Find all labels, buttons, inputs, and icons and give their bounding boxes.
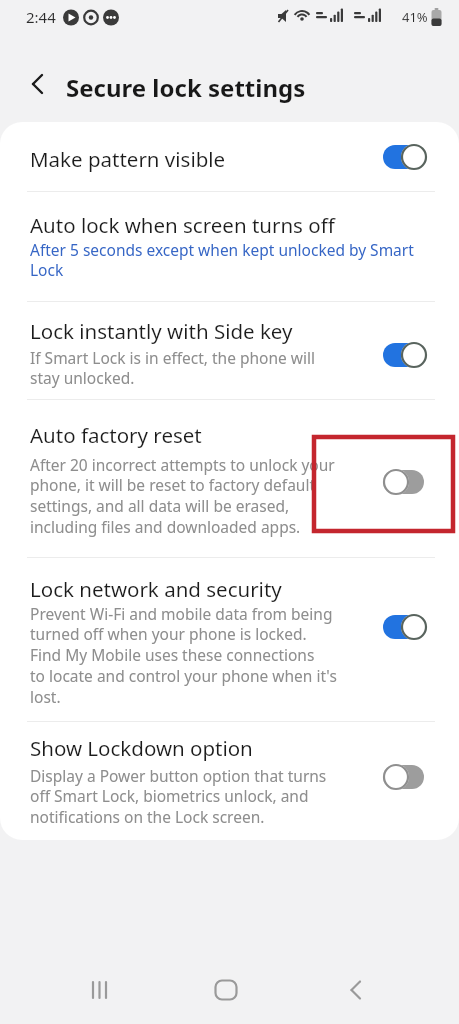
staticText: If Smart Lock is in effect, the phone wi… — [30, 347, 315, 389]
button[interactable] — [88, 977, 114, 1003]
staticText: Lock instantly with Side key — [30, 317, 293, 345]
button[interactable] — [24, 70, 58, 104]
button[interactable]: Auto lock when screen turns off — [0, 192, 459, 301]
button[interactable]: Show Lockdown option — [0, 722, 459, 840]
staticText: Make pattern visible — [30, 145, 226, 173]
button[interactable] — [383, 613, 427, 641]
button[interactable]: Lock network and security — [0, 558, 459, 721]
staticText: Show Lockdown option — [30, 734, 253, 762]
button[interactable]: Lock instantly with Side key — [0, 302, 459, 399]
staticText: 41% — [402, 8, 428, 26]
staticText: Auto factory reset — [30, 421, 202, 449]
button[interactable] — [383, 143, 427, 171]
staticText: After 20 incorrect attempts to unlock yo… — [30, 454, 335, 538]
button[interactable]: Make pattern visible — [0, 122, 459, 191]
staticText: Prevent Wi-Fi and mobile data from being… — [30, 603, 337, 708]
button[interactable] — [343, 977, 369, 1003]
staticText: Lock network and security — [30, 575, 282, 603]
button[interactable] — [383, 763, 427, 791]
button[interactable] — [383, 468, 427, 496]
staticText: Auto lock when screen turns off — [30, 211, 335, 239]
button[interactable] — [383, 341, 427, 369]
button[interactable]: Auto factory reset — [0, 400, 459, 557]
staticText: 2:44 — [26, 7, 56, 27]
staticText: Display a Power button option that turns… — [30, 765, 327, 828]
staticText: After 5 seconds except when kept unlocke… — [30, 239, 414, 281]
staticText: Secure lock settings — [66, 71, 306, 104]
button[interactable] — [213, 977, 239, 1003]
